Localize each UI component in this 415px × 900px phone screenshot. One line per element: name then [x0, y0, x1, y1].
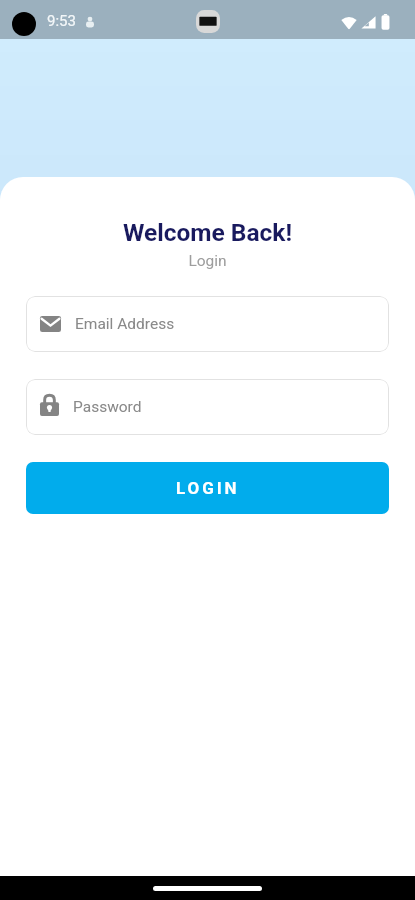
staticText: Login	[0, 252, 415, 270]
button[interactable]: Password	[26, 379, 389, 435]
staticText: Welcome Back!	[0, 218, 415, 247]
button[interactable]: Email Address	[26, 296, 389, 352]
staticText: LOGIN	[176, 478, 240, 498]
staticText: Email Address	[75, 315, 175, 333]
staticText: 9:53	[47, 12, 76, 30]
staticText: Password	[73, 398, 142, 416]
button[interactable]: LOGIN	[26, 462, 389, 514]
